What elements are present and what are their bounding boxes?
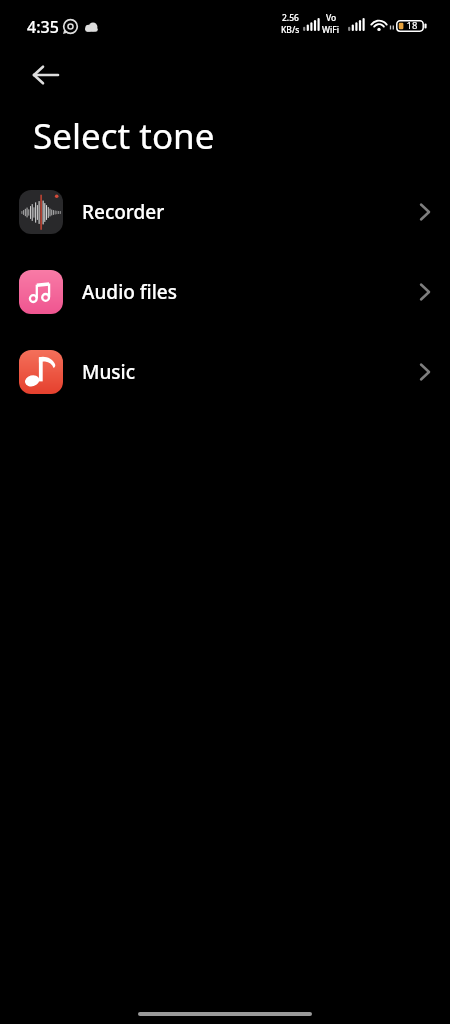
button[interactable] — [22, 55, 70, 95]
button[interactable]: Music — [0, 332, 450, 412]
staticText: Audio files — [82, 279, 177, 305]
button[interactable]: Audio files — [0, 252, 450, 332]
staticText: 18 — [404, 19, 420, 32]
staticText: Music — [82, 359, 136, 385]
staticText: Vo — [326, 12, 337, 24]
staticText: Select tone — [33, 112, 215, 160]
button[interactable]: Recorder — [0, 172, 450, 252]
staticText: Recorder — [82, 199, 165, 225]
staticText: KB/s — [281, 24, 300, 36]
staticText: 4:35 — [27, 16, 59, 38]
staticText: WiFi — [322, 24, 340, 36]
staticText: 2.56 — [282, 12, 299, 24]
